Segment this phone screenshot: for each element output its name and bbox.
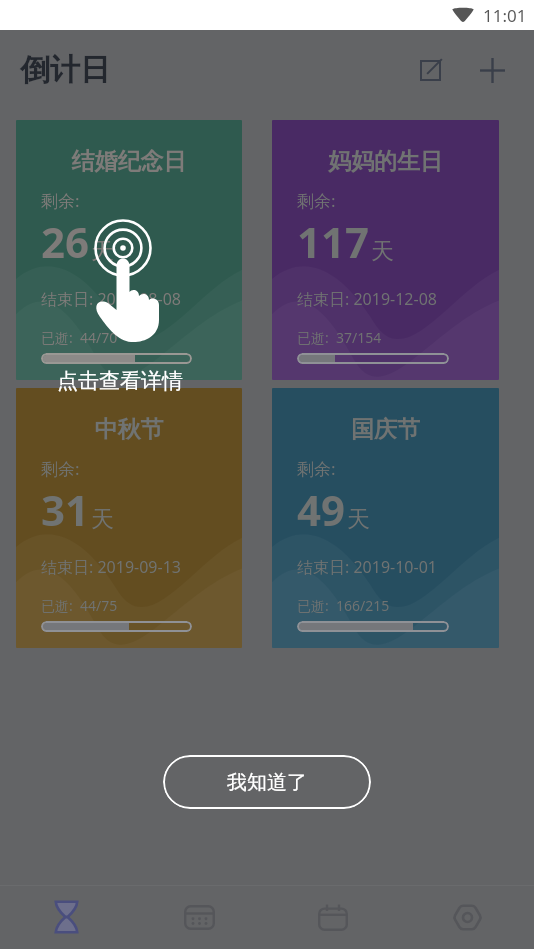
staticText: 结婚纪念日 [16,147,242,176]
button[interactable]: 国庆节 [272,388,499,648]
staticText: 已逝: 37/154 [297,328,382,347]
button[interactable]: 我知道了 [163,755,371,809]
staticText: 天 [91,237,114,266]
staticText: 剩余: [297,189,336,212]
staticText: 结束日: 2019-12-08 [297,288,437,310]
staticText: 我知道了 [227,770,307,795]
staticText: 天 [347,505,370,534]
staticText: 中秋节 [16,415,242,444]
staticText: 剩余: [297,457,336,480]
staticText: 国庆节 [272,415,499,444]
staticText: 剩余: [41,457,80,480]
staticText: 天 [91,505,114,534]
staticText: 117 [297,213,370,270]
button[interactable]: Edit [414,44,466,96]
staticText: 结束日: 2019-08-08 [41,288,181,310]
staticText: 已逝: 166/215 [297,596,390,615]
button[interactable]: Add [466,44,518,96]
staticText: 已逝: 44/75 [41,596,118,615]
staticText: 31 [41,481,90,538]
staticText: 已逝: 44/70 [41,328,118,347]
staticText: 天 [371,237,394,266]
button[interactable]: 结婚纪念日 [16,120,242,380]
staticText: 结束日: 2019-09-13 [41,556,181,578]
staticText: 49 [297,481,346,538]
button[interactable]: 中秋节 [16,388,242,648]
staticText: 剩余: [41,189,80,212]
staticText: 结束日: 2019-10-01 [297,556,437,578]
staticText: 11:01 [483,4,527,27]
staticText: 妈妈的生日 [272,147,499,176]
staticText: 26 [41,213,90,270]
button[interactable]: 妈妈的生日 [272,120,499,380]
button[interactable]: Countdown [0,885,133,949]
staticText: 点击查看详情 [10,368,230,394]
staticText: 倒计日 [20,51,110,89]
